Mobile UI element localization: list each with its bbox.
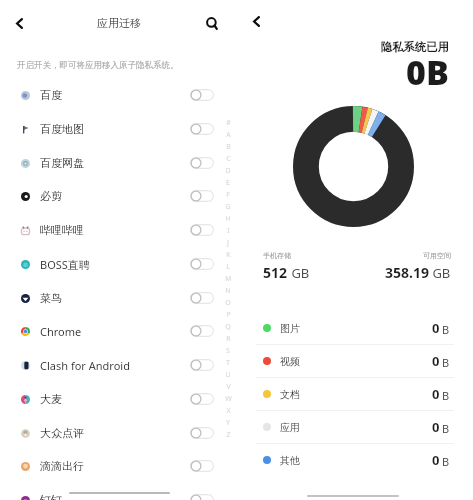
button[interactable]: Toggle — [190, 325, 214, 337]
staticText: I — [227, 226, 230, 236]
staticText: GB — [288, 264, 310, 282]
button[interactable]: Toggle — [190, 460, 214, 472]
button[interactable]: Toggle — [190, 123, 214, 135]
button[interactable]: 百度 — [0, 78, 236, 112]
staticText: 视频 — [280, 355, 300, 368]
staticText: A — [226, 130, 231, 140]
button[interactable]: Back — [4, 6, 35, 40]
button[interactable]: 哔哩哔哩 — [0, 213, 236, 247]
staticText: B — [442, 322, 450, 337]
staticText: C — [226, 154, 231, 164]
staticText: Z — [226, 430, 231, 440]
button[interactable]: Toggle — [190, 157, 214, 169]
staticText: B — [442, 388, 450, 403]
staticText: W — [225, 394, 232, 404]
staticText: 大麦 — [40, 392, 62, 406]
button[interactable]: BOSS直聘 — [0, 247, 236, 281]
staticText: 滴滴出行 — [40, 459, 84, 473]
staticText: GB — [429, 264, 451, 282]
button[interactable]: Toggle — [190, 494, 214, 500]
staticText: E — [226, 178, 230, 188]
button[interactable]: 图片 — [256, 312, 454, 344]
staticText: 手机存储 — [263, 251, 291, 260]
button[interactable]: 百度地图 — [0, 112, 236, 146]
button[interactable]: Search — [196, 6, 227, 40]
staticText: 0 — [432, 451, 440, 469]
staticText: B — [442, 355, 450, 370]
staticText: 哔哩哔哩 — [40, 223, 84, 237]
staticText: Y — [226, 418, 230, 428]
button[interactable]: Alphabet index — [222, 117, 234, 441]
staticText: 菜鸟 — [40, 291, 62, 305]
button[interactable]: Toggle — [190, 393, 214, 405]
staticText: 其他 — [280, 454, 300, 467]
staticText: M — [225, 274, 232, 284]
staticText: 0 — [432, 385, 440, 403]
button[interactable]: Chrome — [0, 314, 236, 348]
button[interactable]: 滴滴出行 — [0, 449, 236, 483]
staticText: 百度地图 — [40, 122, 84, 136]
staticText: 0 — [432, 319, 440, 337]
button[interactable]: 菜鸟 — [0, 281, 236, 315]
staticText: 图片 — [280, 322, 300, 335]
button[interactable]: 应用迁移 — [96, 12, 142, 34]
staticText: B — [442, 454, 450, 469]
button[interactable]: Clash for Android — [0, 348, 236, 382]
staticText: J — [227, 238, 229, 248]
button[interactable]: Toggle — [190, 89, 214, 101]
button[interactable]: Toggle — [190, 224, 214, 236]
staticText: R — [226, 334, 231, 344]
staticText: 开启开关，即可将应用移入原子隐私系统。 — [17, 60, 179, 71]
staticText: U — [225, 370, 231, 380]
button[interactable]: Toggle — [190, 190, 214, 202]
button[interactable]: Toggle — [190, 359, 214, 371]
staticText: 0 — [432, 352, 440, 370]
button[interactable]: Toggle — [190, 292, 214, 304]
staticText: F — [226, 190, 230, 200]
staticText: 百度 — [40, 88, 62, 102]
staticText: D — [225, 166, 231, 176]
staticText: 必剪 — [40, 189, 62, 203]
staticText: 0B — [406, 49, 449, 95]
staticText: Chrome — [40, 324, 82, 339]
button[interactable]: 其他 — [256, 444, 454, 476]
staticText: T — [226, 358, 230, 368]
staticText: 可用空间 — [423, 251, 451, 260]
staticText: S — [226, 346, 230, 356]
staticText: 百度网盘 — [40, 156, 84, 170]
staticText: V — [226, 382, 231, 392]
staticText: 文档 — [280, 388, 300, 401]
staticText: 隐私系统已用 — [381, 40, 449, 54]
button[interactable]: Back — [240, 5, 272, 37]
staticText: 应用 — [280, 421, 300, 434]
button[interactable]: 文档 — [256, 378, 454, 410]
staticText: 应用迁移 — [97, 16, 141, 30]
staticText: B — [442, 421, 450, 436]
staticText: Clash for Android — [40, 358, 130, 373]
button[interactable]: 必剪 — [0, 179, 236, 213]
staticText: H — [225, 214, 231, 224]
button[interactable]: 钉钉 — [0, 483, 236, 500]
button[interactable]: 大众点评 — [0, 416, 236, 450]
staticText: G — [225, 202, 231, 212]
staticText: O — [225, 298, 231, 308]
staticText: 512 — [263, 263, 288, 282]
staticText: 0 — [432, 418, 440, 436]
button[interactable]: Toggle — [190, 258, 214, 270]
staticText: Q — [225, 322, 231, 332]
staticText: X — [226, 406, 231, 416]
button[interactable]: 大麦 — [0, 382, 236, 416]
staticText: N — [225, 286, 231, 296]
staticText: 钉钉 — [40, 493, 62, 500]
staticText: 大众点评 — [40, 426, 84, 440]
button[interactable]: 应用 — [256, 411, 454, 443]
staticText: P — [226, 310, 231, 320]
staticText: B — [226, 142, 231, 152]
staticText: L — [226, 262, 230, 272]
button[interactable]: 视频 — [256, 345, 454, 377]
staticText: K — [226, 250, 231, 260]
staticText: BOSS直聘 — [40, 257, 90, 272]
staticText: # — [226, 118, 231, 128]
button[interactable]: 百度网盘 — [0, 146, 236, 180]
button[interactable]: Toggle — [190, 427, 214, 439]
